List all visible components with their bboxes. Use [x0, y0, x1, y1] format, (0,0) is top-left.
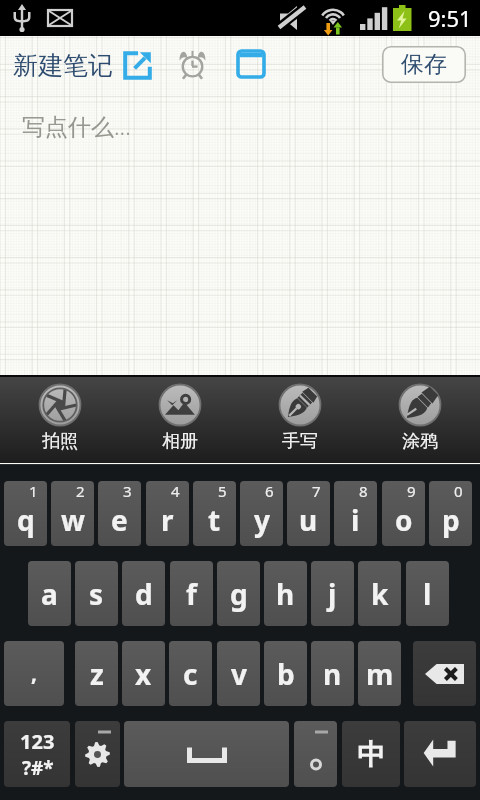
button[interactable]: 6 — [240, 481, 283, 546]
button[interactable]: 保存 — [382, 46, 466, 83]
staticText: r — [161, 501, 174, 539]
staticText: h — [276, 575, 295, 613]
staticText: p — [442, 501, 460, 539]
staticText: l — [423, 575, 432, 613]
button[interactable]: 8 — [334, 481, 377, 546]
button[interactable]: 拍照 — [0, 374, 120, 462]
button[interactable]: 5 — [193, 481, 236, 546]
button[interactable]: Space — [124, 721, 289, 787]
button[interactable]: 涂鸦 — [360, 374, 480, 462]
button[interactable]: 4 — [146, 481, 189, 546]
staticText: b — [277, 655, 295, 693]
button[interactable]: Backspace — [413, 641, 476, 706]
button[interactable]: f — [170, 561, 213, 626]
staticText: 6 — [265, 481, 274, 501]
staticText: q — [17, 501, 35, 539]
staticText: z — [90, 655, 104, 693]
button[interactable]: z — [75, 641, 118, 706]
staticText: 9:51 — [428, 3, 472, 33]
staticText: 拍照 — [42, 430, 78, 453]
button[interactable]: 中 — [342, 721, 400, 787]
staticText: m — [366, 655, 394, 693]
button[interactable]: 3 — [98, 481, 141, 546]
button[interactable]: 新建笔记 — [13, 50, 113, 81]
staticText: 7 — [312, 481, 321, 501]
staticText: c — [183, 655, 198, 693]
staticText: o — [395, 501, 413, 539]
staticText: , — [31, 659, 37, 688]
staticText: 手写 — [282, 430, 318, 453]
staticText: 123 — [20, 728, 55, 755]
button[interactable]: 手写 — [240, 374, 360, 462]
staticText: f — [186, 575, 197, 613]
staticText: d — [135, 575, 153, 613]
button[interactable]: Period — [294, 721, 337, 787]
button[interactable]: b — [264, 641, 307, 706]
staticText: ?#* — [22, 755, 54, 781]
staticText: 0 — [454, 481, 463, 501]
staticText: u — [299, 501, 318, 539]
button[interactable]: 2 — [51, 481, 94, 546]
button[interactable]: Numbers and symbols — [4, 721, 70, 787]
button[interactable]: 9 — [382, 481, 425, 546]
button[interactable]: Alarm — [170, 41, 214, 85]
staticText: n — [323, 655, 342, 693]
button[interactable]: d — [122, 561, 165, 626]
button[interactable]: m — [358, 641, 401, 706]
button[interactable]: l — [406, 561, 449, 626]
button[interactable]: x — [122, 641, 165, 706]
button[interactable]: g — [217, 561, 260, 626]
staticText: 写点什么... — [22, 110, 131, 141]
button[interactable]: a — [28, 561, 71, 626]
button[interactable]: , — [4, 641, 64, 706]
staticText: g — [230, 575, 248, 613]
button[interactable]: s — [75, 561, 118, 626]
staticText: s — [89, 575, 104, 613]
button[interactable]: h — [264, 561, 307, 626]
staticText: 4 — [171, 481, 180, 501]
button[interactable]: Share — [115, 43, 159, 87]
staticText: t — [208, 501, 221, 539]
button[interactable]: Enter — [404, 721, 476, 787]
button[interactable]: Keyboard settings — [75, 721, 120, 787]
staticText: v — [231, 655, 247, 693]
staticText: 中 — [357, 737, 385, 772]
button[interactable]: j — [311, 561, 354, 626]
staticText: 1 — [29, 481, 38, 501]
button[interactable]: n — [311, 641, 354, 706]
staticText: 2 — [76, 481, 85, 501]
staticText: j — [328, 575, 337, 613]
staticText: y — [254, 501, 270, 539]
staticText: a — [41, 575, 58, 613]
staticText: i — [351, 501, 360, 539]
button[interactable]: 0 — [429, 481, 472, 546]
staticText: 涂鸦 — [402, 430, 438, 453]
staticText: k — [371, 575, 389, 613]
staticText: 9 — [407, 481, 416, 501]
staticText: 8 — [359, 481, 368, 501]
button[interactable]: v — [217, 641, 260, 706]
staticText: 5 — [218, 481, 227, 501]
staticText: w — [61, 501, 85, 539]
staticText: 保存 — [401, 50, 447, 79]
button[interactable]: 7 — [287, 481, 330, 546]
staticText: 相册 — [162, 430, 198, 453]
button[interactable]: Note template — [229, 42, 273, 86]
staticText: 3 — [123, 481, 132, 501]
button[interactable]: k — [358, 561, 401, 626]
button[interactable]: 相册 — [120, 374, 240, 462]
staticText: e — [111, 501, 128, 539]
button[interactable]: c — [169, 641, 212, 706]
button[interactable]: 1 — [4, 481, 47, 546]
staticText: x — [135, 655, 152, 693]
